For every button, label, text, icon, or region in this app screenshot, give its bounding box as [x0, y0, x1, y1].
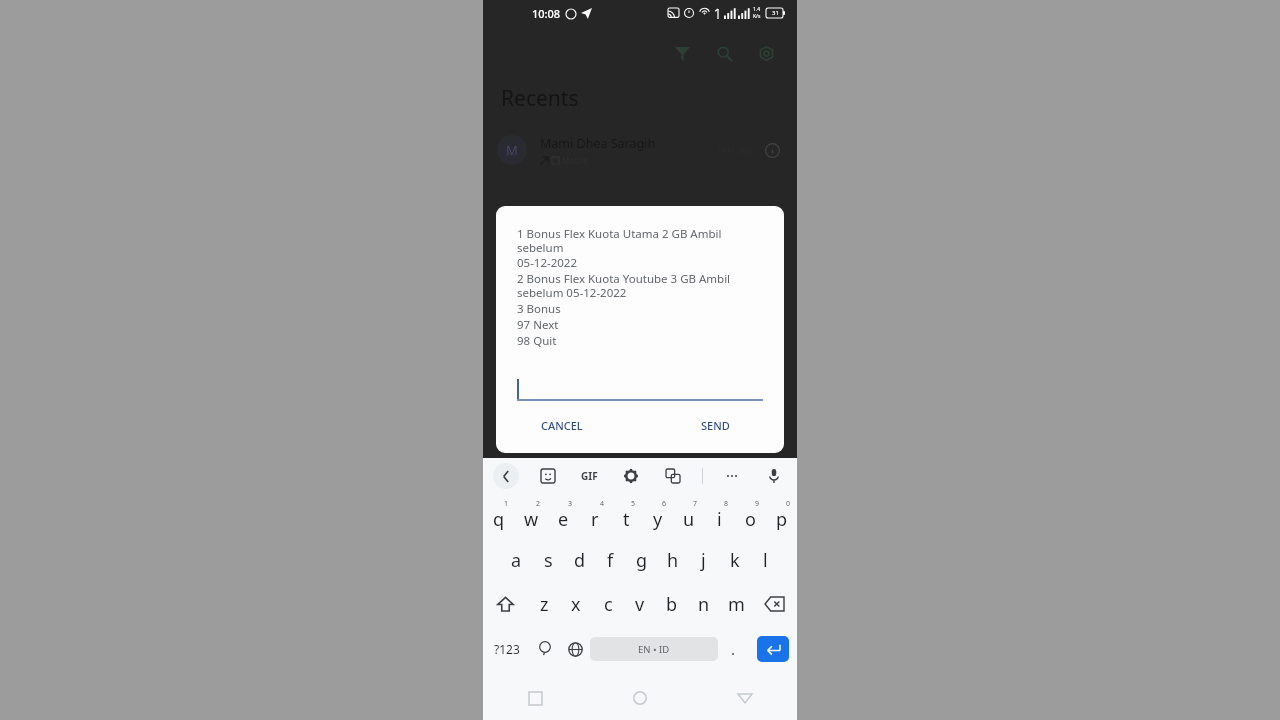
button[interactable]: Home	[587, 676, 692, 720]
staticText: 2	[536, 499, 541, 509]
button[interactable]: .	[718, 626, 748, 672]
staticText: t	[623, 507, 630, 532]
button[interactable]: M	[483, 127, 797, 173]
staticText: i	[717, 507, 722, 532]
staticText: 1 Bonus Flex Kuota Utama 2 GB Ambil sebe…	[517, 226, 763, 271]
button[interactable]: GIF	[577, 465, 602, 487]
button[interactable]: s	[532, 538, 564, 582]
button[interactable]: Enter	[757, 636, 789, 662]
staticText: 10:08	[532, 6, 561, 21]
button[interactable]: Stickers	[535, 463, 561, 489]
staticText: 2 Bonus Flex Kuota Youtube 3 GB Ambil se…	[517, 271, 731, 301]
button[interactable]: Shift	[483, 582, 528, 626]
button[interactable]: m	[720, 582, 752, 626]
button[interactable]: More options	[719, 463, 745, 489]
staticText: 7	[693, 499, 698, 509]
staticText: M	[506, 141, 518, 159]
button[interactable]: 9	[735, 494, 766, 538]
staticText: l	[763, 548, 768, 573]
staticText: .	[731, 639, 736, 659]
button[interactable]: Back	[493, 463, 519, 489]
button[interactable]: 5	[611, 494, 642, 538]
button[interactable]: Recent apps	[483, 676, 587, 720]
staticText: z	[540, 592, 549, 617]
staticText: h	[667, 548, 679, 573]
button[interactable]: Filter	[665, 36, 699, 70]
button[interactable]: 6	[642, 494, 673, 538]
staticText: f	[607, 548, 614, 573]
button[interactable]: ?123	[483, 626, 530, 672]
button[interactable]: z	[528, 582, 560, 626]
button[interactable]: a	[500, 538, 532, 582]
staticText: 98 Quit	[517, 333, 557, 349]
button[interactable]: n	[688, 582, 720, 626]
button[interactable]: Emoji	[530, 626, 560, 672]
staticText: c	[604, 592, 613, 617]
staticText: g	[636, 548, 648, 573]
button[interactable]: Back	[692, 676, 797, 720]
button[interactable]: b	[656, 582, 688, 626]
staticText: EN • ID	[638, 643, 670, 656]
button[interactable]: SEND	[693, 412, 738, 439]
staticText: CANCEL	[541, 418, 583, 433]
staticText: m	[728, 592, 745, 617]
staticText: s	[544, 548, 553, 573]
staticText: d	[574, 548, 586, 573]
staticText: n	[698, 592, 710, 617]
button[interactable]: CANCEL	[533, 412, 591, 439]
button[interactable]: Settings	[749, 36, 783, 70]
button[interactable]: v	[624, 582, 656, 626]
staticText: w	[524, 507, 539, 532]
staticText: 6	[662, 499, 667, 509]
button[interactable]: Keyboard settings	[618, 463, 644, 489]
staticText: r	[591, 507, 599, 532]
button[interactable]: f	[595, 538, 626, 582]
button[interactable]: 0	[766, 494, 797, 538]
staticText: y	[653, 507, 663, 532]
staticText: 3	[568, 499, 573, 509]
staticText: 0	[786, 499, 791, 509]
staticText: k	[730, 548, 740, 573]
button[interactable]: Backspace	[752, 582, 797, 626]
button[interactable]: h	[657, 538, 688, 582]
button[interactable]: l	[750, 538, 781, 582]
button[interactable]: 8	[704, 494, 735, 538]
staticText: 1.4	[753, 6, 761, 13]
button[interactable]: 4	[579, 494, 611, 538]
button[interactable]	[517, 371, 763, 401]
button[interactable]: Search	[707, 36, 741, 70]
staticText: 31	[772, 9, 779, 17]
staticText: 97 Next	[517, 317, 559, 333]
button[interactable]: g	[626, 538, 657, 582]
staticText: Recents	[501, 84, 579, 113]
button[interactable]: j	[688, 538, 719, 582]
button[interactable]: 2	[515, 494, 547, 538]
button[interactable]: Change language	[560, 626, 590, 672]
staticText: a	[511, 548, 522, 573]
button[interactable]: c	[592, 582, 624, 626]
staticText: 8	[724, 499, 729, 509]
button[interactable]: d	[564, 538, 595, 582]
staticText: K/s	[753, 13, 761, 20]
staticText: GIF	[581, 469, 598, 483]
staticText: ?123	[494, 641, 520, 657]
button[interactable]: 7	[673, 494, 704, 538]
button[interactable]: Voice input	[761, 463, 787, 489]
staticText: j	[701, 548, 706, 573]
button[interactable]: k	[719, 538, 750, 582]
staticText: o	[745, 507, 756, 532]
button[interactable]: 1	[483, 494, 515, 538]
button[interactable]: 3	[547, 494, 579, 538]
staticText: e	[558, 507, 569, 532]
staticText: 1	[504, 499, 509, 509]
staticText: u	[683, 507, 695, 532]
button[interactable]: x	[560, 582, 592, 626]
staticText: q	[493, 507, 505, 532]
staticText: p	[776, 507, 788, 532]
staticText: 4	[600, 499, 605, 509]
button[interactable]: Call details	[761, 139, 783, 161]
button[interactable]: EN • ID	[590, 637, 718, 661]
staticText: x	[571, 592, 581, 617]
button[interactable]: Translate	[660, 463, 686, 489]
